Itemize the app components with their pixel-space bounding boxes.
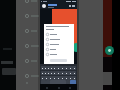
button[interactable] — [46, 37, 74, 42]
button[interactable] — [60, 76, 64, 80]
button[interactable] — [16, 23, 40, 38]
button[interactable] — [60, 71, 64, 75]
button[interactable] — [53, 71, 56, 75]
button[interactable] — [16, 68, 40, 83]
button[interactable] — [68, 71, 72, 75]
button[interactable] — [44, 76, 48, 80]
button[interactable] — [44, 71, 47, 75]
button[interactable] — [41, 66, 44, 70]
button[interactable] — [72, 66, 76, 70]
button[interactable] — [46, 52, 74, 57]
button[interactable] — [16, 8, 40, 23]
button[interactable] — [41, 76, 44, 80]
button[interactable] — [46, 42, 74, 47]
button[interactable] — [47, 71, 50, 75]
button[interactable] — [52, 76, 56, 80]
button[interactable] — [56, 71, 60, 75]
button[interactable] — [64, 71, 68, 75]
button[interactable] — [60, 66, 64, 70]
button[interactable] — [46, 32, 74, 37]
button[interactable] — [46, 47, 74, 52]
button[interactable] — [48, 76, 52, 80]
button[interactable]: Compose message — [105, 46, 114, 55]
button[interactable] — [68, 76, 72, 80]
button[interactable] — [50, 66, 53, 70]
button[interactable] — [64, 66, 68, 70]
button[interactable] — [16, 53, 40, 68]
button[interactable] — [47, 66, 50, 70]
button[interactable] — [64, 76, 68, 80]
button[interactable] — [72, 71, 76, 75]
button[interactable] — [16, 38, 40, 53]
button[interactable] — [53, 66, 56, 70]
button[interactable] — [68, 66, 72, 70]
button[interactable] — [41, 71, 44, 75]
button[interactable] — [56, 76, 60, 80]
button[interactable] — [72, 76, 76, 80]
button[interactable] — [44, 66, 47, 70]
button[interactable] — [56, 66, 60, 70]
button[interactable] — [50, 71, 53, 75]
button[interactable]: Enter — [70, 80, 76, 84]
button[interactable] — [16, 0, 40, 8]
button[interactable]: New message — [72, 43, 81, 52]
